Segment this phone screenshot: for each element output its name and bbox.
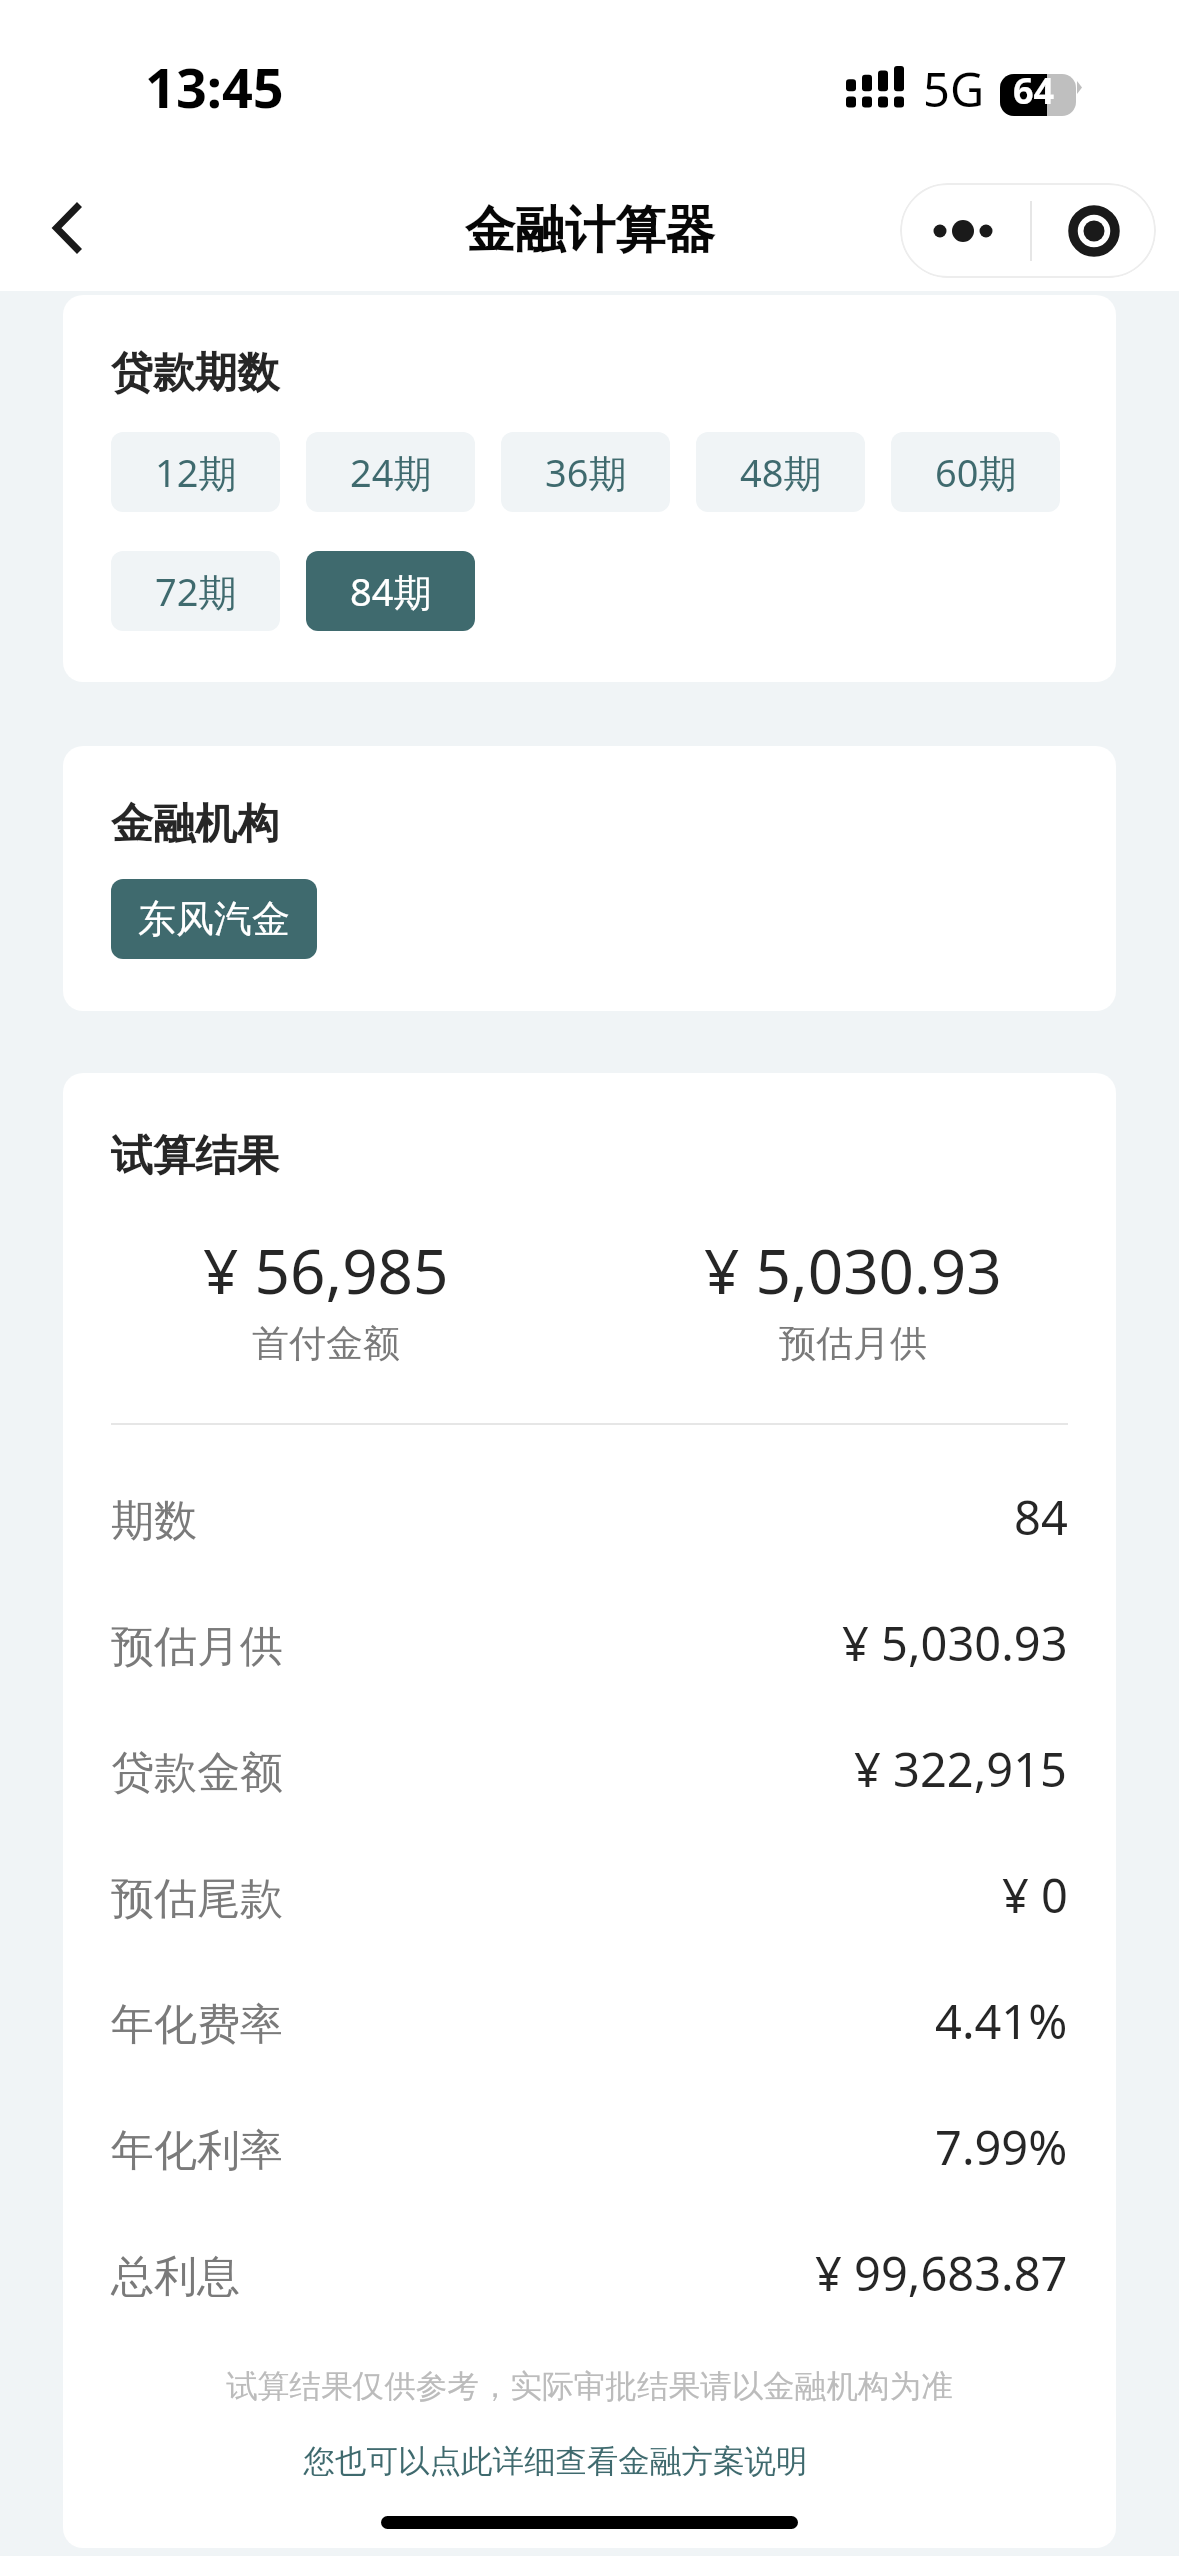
staticText: 首付金额	[252, 1320, 400, 1367]
button[interactable]: 您也可以点此详细查看金融方案说明	[63, 2442, 1116, 2482]
button[interactable]: 12期	[111, 432, 280, 512]
staticText: 预估尾款	[111, 1872, 283, 1926]
button[interactable]: 60期	[891, 432, 1060, 512]
staticText: 金融计算器	[465, 199, 715, 262]
staticText: 金融机构	[111, 798, 279, 851]
staticText: 试算结果仅供参考，实际审批结果请以金融机构为准	[63, 2367, 1116, 2407]
staticText: 预估月供	[111, 1620, 283, 1674]
staticText: ¥ 56,985	[203, 1228, 449, 1312]
staticText: 东风汽金	[138, 895, 290, 943]
staticText: 4.41%	[935, 1989, 1068, 2053]
button[interactable]: 贷款金额	[111, 1710, 1068, 1836]
staticText: 预估月供	[779, 1320, 927, 1367]
staticText: 试算结果	[111, 1130, 279, 1183]
staticText: 期数	[111, 1494, 197, 1548]
button[interactable]: 72期	[111, 551, 280, 631]
staticText: ¥ 99,683.87	[815, 2241, 1068, 2305]
staticText: 64	[1013, 66, 1055, 115]
staticText: 60期	[935, 446, 1017, 498]
button[interactable]: 48期	[696, 432, 865, 512]
button[interactable]: 期数	[111, 1458, 1068, 1584]
staticText: 84	[1014, 1485, 1068, 1549]
staticText: 年化利率	[111, 2124, 283, 2178]
button[interactable]: Close mini program	[1032, 183, 1156, 278]
staticText: 36期	[545, 446, 627, 498]
staticText: 年化费率	[111, 1998, 283, 2052]
button[interactable]: 24期	[306, 432, 475, 512]
staticText: 24期	[350, 446, 432, 498]
button[interactable]: 84期	[306, 551, 475, 631]
button[interactable]: 预估尾款	[111, 1836, 1068, 1962]
button[interactable]: 36期	[501, 432, 670, 512]
button[interactable]: 年化利率	[111, 2088, 1068, 2214]
button[interactable]: 东风汽金	[111, 879, 317, 959]
staticText: 贷款期数	[111, 347, 279, 400]
staticText: 84期	[350, 565, 432, 617]
staticText: 72期	[155, 565, 237, 617]
staticText: ¥ 0	[1002, 1863, 1068, 1927]
staticText: ¥ 5,030.93	[704, 1228, 1002, 1312]
button[interactable]: Back	[13, 175, 123, 281]
staticText: ¥ 5,030.93	[842, 1611, 1068, 1675]
staticText: 12期	[155, 446, 237, 498]
staticText: 7.99%	[935, 2115, 1068, 2179]
staticText: 贷款金额	[111, 1746, 283, 1800]
staticText: 5G	[923, 57, 985, 121]
button[interactable]: 年化费率	[111, 1962, 1068, 2088]
button[interactable]: More options	[900, 183, 1030, 278]
staticText: 13:45	[145, 50, 284, 124]
button[interactable]: 总利息	[111, 2214, 1068, 2340]
button[interactable]: 预估月供	[111, 1584, 1068, 1710]
staticText: 总利息	[111, 2250, 240, 2304]
staticText: ¥ 322,915	[854, 1737, 1068, 1801]
staticText: 48期	[740, 446, 822, 498]
